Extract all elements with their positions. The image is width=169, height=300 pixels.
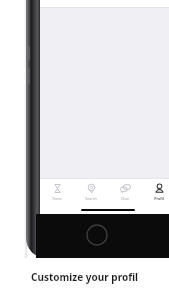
button[interactable]: Timer	[40, 179, 74, 205]
staticText: Timer	[52, 196, 62, 201]
button[interactable]: Chat	[108, 179, 142, 205]
staticText: Customize your profil	[31, 270, 138, 284]
button[interactable]: Display name	[40, 0, 169, 8]
button[interactable]: Profil	[142, 179, 169, 205]
button[interactable]: Search	[74, 179, 108, 205]
staticText: Search	[85, 196, 97, 201]
staticText: Chat	[121, 196, 129, 201]
staticText: Profil	[154, 196, 164, 201]
